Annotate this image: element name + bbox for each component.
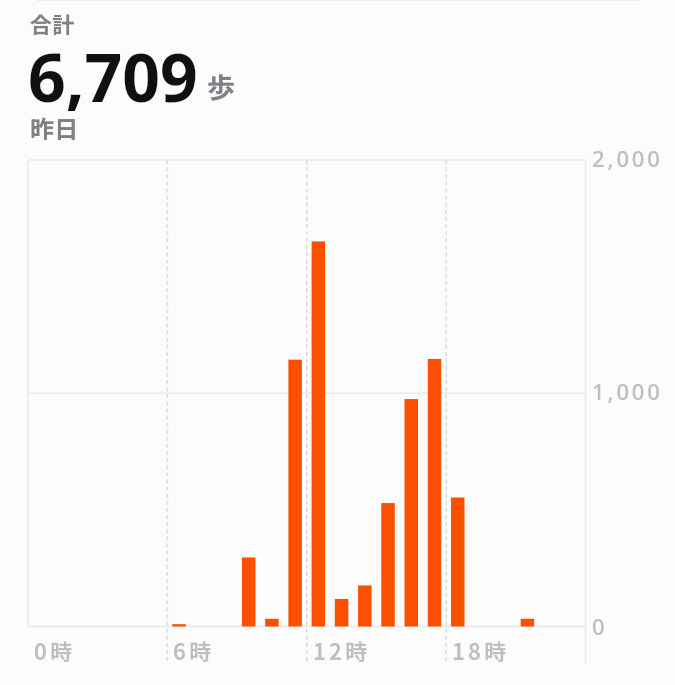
staticText: 2,000 — [592, 143, 663, 173]
staticText: 0 — [592, 611, 608, 641]
staticText: 合計 — [30, 7, 75, 39]
staticText: 0時 — [34, 634, 76, 666]
button[interactable]: 昨日 — [30, 110, 78, 145]
button[interactable]: 合計 — [30, 7, 75, 39]
staticText: 12時 — [313, 634, 371, 666]
button[interactable]: 6,709 — [28, 31, 198, 121]
staticText: 昨日 — [30, 110, 78, 145]
staticText: 1,000 — [592, 376, 663, 406]
staticText: 6時 — [173, 634, 215, 666]
button[interactable]: 1時間ごとの歩数グラフ — [28, 150, 588, 670]
staticText: 6,709 — [28, 31, 198, 121]
staticText: 歩 — [207, 66, 236, 107]
staticText: 18時 — [452, 634, 510, 666]
